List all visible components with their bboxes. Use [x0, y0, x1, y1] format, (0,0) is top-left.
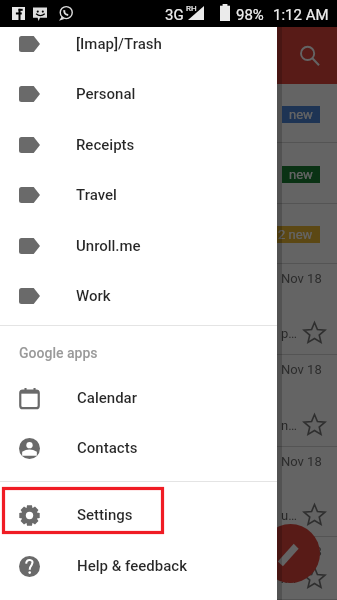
staticText: p…	[281, 326, 297, 341]
staticText: Receipts	[76, 136, 135, 154]
button[interactable]: Unroll.me	[0, 221, 277, 271]
staticText: Nov 18	[281, 362, 322, 377]
button[interactable]: Nov 18	[0, 447, 337, 537]
button[interactable]: Settings	[0, 490, 277, 540]
staticText: Travel	[76, 186, 117, 204]
button[interactable]: new	[0, 84, 337, 143]
button[interactable]: [Imap]/Trash	[0, 19, 277, 69]
button[interactable]: 2 new	[0, 204, 337, 264]
button[interactable]: Contacts	[0, 423, 277, 473]
button[interactable]: Nov 18	[0, 264, 337, 355]
button[interactable]: Help & feedback	[0, 541, 277, 591]
staticText: 3G	[165, 6, 184, 24]
staticText: new	[289, 107, 313, 122]
staticText: 98%	[236, 6, 264, 24]
staticText: Settings	[77, 506, 133, 524]
staticText: Nov 18	[281, 271, 322, 286]
button[interactable]: Receipts	[0, 120, 277, 170]
staticText: x…	[281, 571, 297, 586]
staticText: Nov 18	[281, 544, 322, 559]
staticText: Unroll.me	[76, 237, 141, 255]
staticText: RH	[186, 4, 197, 13]
staticText: u…	[281, 508, 297, 523]
staticText: Work	[76, 287, 111, 305]
button[interactable]: new	[0, 143, 337, 204]
button[interactable]: Compose	[261, 524, 320, 583]
staticText: Nov 18	[281, 454, 322, 469]
staticText: [Imap]/Trash	[76, 35, 162, 53]
button[interactable]: Work	[0, 271, 277, 321]
staticText: Google apps	[19, 345, 98, 361]
staticText: 2 new	[278, 227, 313, 242]
staticText: n…	[281, 418, 297, 433]
staticText: Contacts	[77, 439, 138, 457]
staticText: Help & feedback	[77, 557, 188, 575]
button[interactable]: Travel	[0, 170, 277, 220]
staticText: Personal	[76, 85, 136, 103]
button[interactable]: Personal	[0, 69, 277, 119]
staticText: Calendar	[77, 389, 138, 407]
button[interactable]: Search	[292, 38, 328, 74]
button[interactable]: Nov 18	[0, 537, 337, 600]
staticText: new	[289, 167, 313, 182]
button[interactable]: Calendar	[0, 373, 277, 423]
button[interactable]: Nov 18	[0, 355, 337, 447]
staticText: 1:12 AM	[273, 6, 329, 24]
